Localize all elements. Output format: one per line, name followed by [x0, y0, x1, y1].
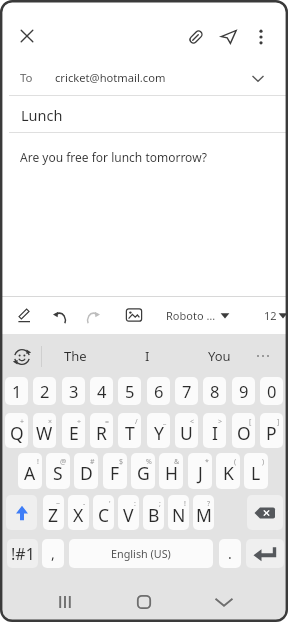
- button[interactable]: U: [175, 413, 198, 448]
- button[interactable]: 8: [203, 377, 226, 405]
- button[interactable]: B: [143, 495, 164, 530]
- button[interactable]: 7: [175, 377, 198, 405]
- button[interactable]: 6: [147, 377, 170, 405]
- button[interactable]: .: [219, 539, 241, 568]
- staticText: L: [251, 461, 261, 485]
- button[interactable]: P: [260, 413, 283, 448]
- button[interactable]: [15, 305, 35, 325]
- staticText: /: [135, 417, 138, 427]
- staticText: F: [110, 461, 120, 485]
- staticText: >: [218, 417, 223, 427]
- button[interactable]: H: [159, 453, 183, 489]
- staticText: D: [80, 461, 93, 485]
- button[interactable]: I: [120, 338, 175, 374]
- button[interactable]: J: [188, 453, 212, 489]
- staticText: P: [266, 421, 277, 445]
- button[interactable]: ,: [42, 539, 64, 568]
- button[interactable]: [0, 62, 288, 95]
- staticText: &: [174, 457, 180, 467]
- button[interactable]: [247, 495, 283, 530]
- staticText: T: [125, 421, 135, 445]
- button[interactable]: Y: [147, 413, 170, 448]
- staticText: (: [234, 457, 237, 467]
- button[interactable]: [14, 23, 40, 49]
- button[interactable]: [250, 338, 280, 374]
- button[interactable]: T: [118, 413, 141, 448]
- button[interactable]: [219, 27, 239, 47]
- button[interactable]: C: [93, 495, 114, 530]
- staticText: *: [205, 457, 209, 467]
- staticText: O: [237, 421, 251, 445]
- staticText: 2: [40, 380, 50, 402]
- button[interactable]: [246, 539, 284, 568]
- button[interactable]: [8, 344, 36, 370]
- staticText: 3: [69, 380, 79, 402]
- button[interactable]: Z: [43, 495, 64, 530]
- button[interactable]: !#1: [7, 539, 38, 568]
- button[interactable]: 1: [5, 377, 28, 405]
- staticText: I: [212, 421, 218, 445]
- button[interactable]: [48, 305, 68, 325]
- button[interactable]: F: [103, 453, 127, 489]
- button[interactable]: D: [74, 453, 98, 489]
- button[interactable]: [119, 586, 169, 618]
- button[interactable]: [252, 27, 270, 47]
- button[interactable]: English (US): [69, 539, 213, 568]
- button[interactable]: [199, 586, 249, 618]
- button[interactable]: K: [216, 453, 240, 489]
- button[interactable]: [0, 134, 288, 294]
- button[interactable]: [6, 495, 37, 530]
- button[interactable]: [124, 305, 144, 325]
- staticText: S: [53, 461, 63, 485]
- button[interactable]: R: [90, 413, 113, 448]
- button[interactable]: V: [118, 495, 139, 530]
- button[interactable]: I: [203, 413, 226, 448]
- button[interactable]: O: [232, 413, 255, 448]
- button[interactable]: 5: [118, 377, 141, 405]
- button[interactable]: X: [68, 495, 89, 530]
- staticText: ): [262, 457, 265, 467]
- staticText: !: [184, 499, 186, 509]
- button[interactable]: L: [244, 453, 268, 489]
- button[interactable]: The: [48, 338, 103, 374]
- button[interactable]: A: [18, 453, 42, 489]
- button[interactable]: 2: [33, 377, 56, 405]
- staticText: !#1: [11, 543, 35, 565]
- button[interactable]: [0, 97, 288, 132]
- button[interactable]: 3: [62, 377, 85, 405]
- button[interactable]: E: [62, 413, 85, 448]
- button[interactable]: [186, 27, 206, 47]
- staticText: V: [123, 503, 134, 527]
- staticText: E: [69, 421, 79, 445]
- button[interactable]: M: [193, 495, 214, 530]
- button[interactable]: [85, 305, 105, 325]
- staticText: !: [37, 457, 39, 467]
- staticText: English (US): [111, 546, 171, 561]
- staticText: W: [36, 421, 53, 445]
- button[interactable]: [258, 303, 288, 327]
- staticText: K: [223, 461, 234, 485]
- staticText: C: [98, 503, 110, 527]
- staticText: 12: [264, 308, 277, 323]
- staticText: A: [24, 461, 36, 485]
- button[interactable]: Q: [5, 413, 28, 448]
- staticText: ÷: [77, 417, 82, 427]
- button[interactable]: 4: [90, 377, 113, 405]
- button[interactable]: S: [46, 453, 70, 489]
- button[interactable]: G: [131, 453, 155, 489]
- button[interactable]: W: [33, 413, 56, 448]
- staticText: 8: [210, 380, 220, 402]
- button[interactable]: N: [168, 495, 189, 530]
- staticText: ': [109, 499, 111, 509]
- staticText: Q: [10, 421, 24, 445]
- button[interactable]: [40, 586, 90, 618]
- button[interactable]: 9: [232, 377, 255, 405]
- staticText: J: [198, 461, 203, 485]
- button[interactable]: 0: [260, 377, 283, 405]
- staticText: cricket@hotmail.com: [55, 70, 166, 85]
- staticText: U: [180, 421, 193, 445]
- staticText: B: [148, 503, 160, 527]
- button[interactable]: [160, 303, 238, 327]
- staticText: ×: [48, 417, 53, 427]
- button[interactable]: You: [192, 338, 247, 374]
